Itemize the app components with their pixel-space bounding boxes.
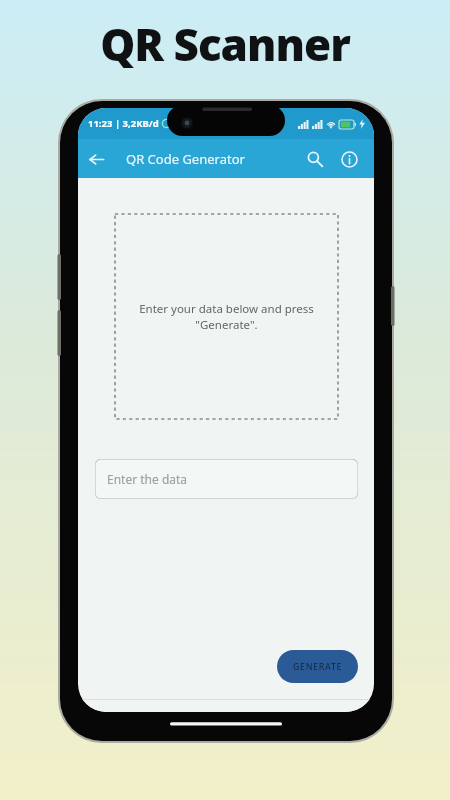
staticText: 11:23 | 3,2KB/d [88, 117, 159, 130]
button[interactable]: GENERATE [277, 650, 358, 683]
button[interactable]: Back [78, 141, 114, 177]
staticText: QR Code Generator [126, 150, 245, 168]
staticText: GENERATE [293, 661, 343, 673]
staticText: Enter your data below and press "Generat… [139, 301, 314, 332]
staticText: Enter the data [107, 471, 188, 487]
button[interactable]: Search [298, 142, 332, 176]
button[interactable]: Info [332, 142, 366, 176]
staticText: QR Scanner [100, 14, 350, 74]
button[interactable]: Enter the data [95, 459, 358, 499]
